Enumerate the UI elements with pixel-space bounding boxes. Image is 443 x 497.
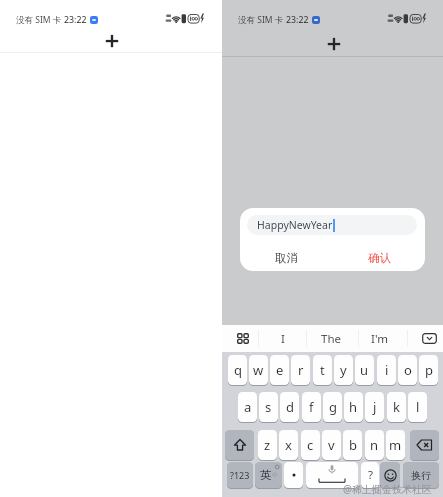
button[interactable]: e [270,355,289,385]
button[interactable] [380,462,400,488]
button[interactable]: c [301,430,320,460]
staticText: I'm [371,331,388,347]
button[interactable]: ?123 [227,462,253,488]
button[interactable]: y [334,355,353,385]
button[interactable]: b [343,430,362,460]
staticText: e [276,361,284,379]
staticText: 没有 SIM 卡 [238,14,284,26]
button[interactable]: x [279,430,298,460]
staticText: h [349,398,358,416]
staticText: The [321,331,341,347]
staticText: f [309,398,314,416]
staticText: 确认 [368,251,391,265]
button[interactable]: k [387,392,406,422]
button[interactable] [410,430,439,460]
staticText: ? [368,467,373,483]
staticText: 换行 [411,469,431,482]
staticText: g [329,398,337,416]
staticText: a [244,398,252,416]
button[interactable]: z [258,430,277,460]
button[interactable]: HappyNewYear [247,215,417,235]
button[interactable]: p [419,355,438,385]
button[interactable]: i [377,355,396,385]
staticText: r [298,361,304,379]
button[interactable] [320,30,348,58]
button[interactable]: The [316,325,346,352]
button[interactable] [306,462,358,488]
staticText: u [360,361,369,379]
button[interactable]: v [322,430,341,460]
staticText: y [340,361,347,379]
button[interactable]: 英 [255,462,282,488]
staticText: t [320,361,325,379]
button[interactable]: u [355,355,374,385]
button[interactable] [98,27,126,55]
staticText: o [404,361,412,379]
staticText: i [385,361,389,379]
staticText: z [264,436,271,454]
staticText: b [349,436,357,454]
staticText: k [393,398,400,416]
staticText: 中 [272,471,278,479]
button[interactable] [225,430,254,460]
button[interactable]: 换行 [403,462,439,488]
staticText: I [281,331,285,347]
staticText: j [373,398,377,416]
button[interactable]: n [365,430,384,460]
staticText: ?123 [230,469,250,481]
button[interactable]: q [228,355,247,385]
staticText: v [328,436,335,454]
button[interactable] [284,462,303,488]
button[interactable]: 取消 [240,245,333,271]
staticText: p [425,361,433,379]
button[interactable]: d [280,392,299,422]
staticText: 23:22 [64,14,87,26]
button[interactable] [230,325,255,352]
button[interactable]: a [238,392,257,422]
staticText: m [389,436,402,454]
staticText: q [234,361,242,379]
staticText: HappyNewYear [257,218,333,232]
button[interactable]: s [259,392,278,422]
button[interactable]: o [398,355,417,385]
button[interactable]: j [365,392,384,422]
button[interactable]: m [386,430,405,460]
staticText: 取消 [275,251,298,265]
button[interactable]: t [313,355,332,385]
button[interactable]: 确认 [333,245,426,271]
button[interactable]: r [291,355,310,385]
button[interactable] [418,325,440,352]
staticText: l [416,398,420,416]
staticText: c [307,436,314,454]
staticText: w [253,361,264,379]
staticText: s [265,398,272,416]
staticText: 英 [260,468,272,482]
button[interactable]: f [302,392,321,422]
button[interactable]: w [249,355,268,385]
staticText: x [285,436,292,454]
button[interactable]: I [270,325,295,352]
button[interactable]: g [323,392,342,422]
button[interactable]: ? [361,462,379,488]
staticText: @稀土掘金技术社区 [343,482,432,496]
staticText: 23:22 [286,14,309,26]
staticText: d [286,398,294,416]
button[interactable]: I'm [365,325,393,352]
staticText: 没有 SIM 卡 [16,14,62,26]
button[interactable]: h [344,392,363,422]
staticText: n [370,436,379,454]
button[interactable]: l [408,392,427,422]
